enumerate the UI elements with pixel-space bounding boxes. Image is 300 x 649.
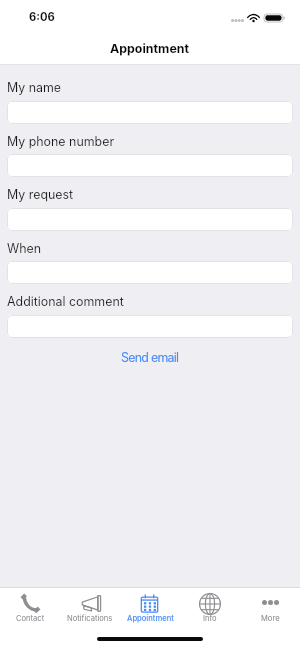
button[interactable]: Info <box>180 588 240 633</box>
button[interactable]: Appointment <box>120 588 180 633</box>
button[interactable]: Notifications <box>60 588 120 633</box>
staticText: My request <box>7 187 74 202</box>
staticText: My name <box>7 80 62 95</box>
button[interactable]: Send email <box>111 347 189 368</box>
staticText: 6:06 <box>29 10 55 24</box>
staticText: Notifications <box>67 614 113 623</box>
staticText: Contact <box>16 614 45 623</box>
staticText: My phone number <box>7 134 115 149</box>
button[interactable] <box>7 208 293 231</box>
staticText: Appointment <box>110 41 190 56</box>
staticText: Info <box>203 614 217 623</box>
button[interactable]: Contact <box>0 588 60 633</box>
button[interactable] <box>7 101 293 124</box>
button[interactable]: More <box>240 588 300 633</box>
staticText: Additional comment <box>7 294 124 309</box>
button[interactable] <box>7 154 293 177</box>
button[interactable] <box>7 261 293 284</box>
staticText: Appointment <box>127 614 174 623</box>
button[interactable] <box>7 315 293 338</box>
staticText: More <box>261 614 280 623</box>
staticText: When <box>7 241 42 256</box>
staticText: Send email <box>121 350 179 365</box>
